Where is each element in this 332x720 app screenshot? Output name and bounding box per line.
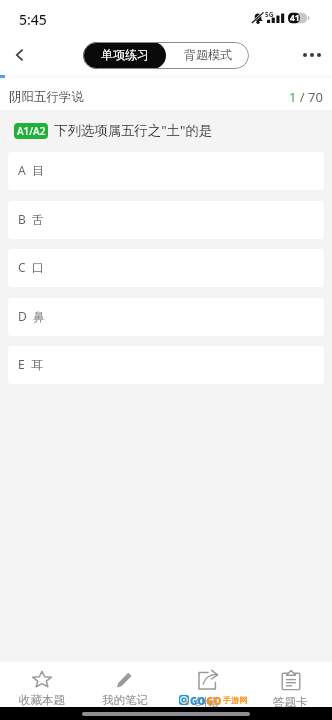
staticText: 口 [32, 260, 44, 275]
button[interactable]: More options [292, 35, 332, 75]
staticText: 我的笔记 [102, 693, 148, 707]
staticText: A1/A2 [17, 124, 46, 138]
staticText: 耳 [31, 357, 43, 372]
button[interactable]: 我的笔记 [83, 662, 166, 707]
button[interactable]: E [8, 346, 324, 384]
staticText: 单项练习 [101, 47, 149, 62]
staticText: GO [190, 694, 206, 705]
button[interactable]: Back [0, 35, 40, 75]
staticText: C [18, 259, 26, 275]
staticText: 鼻 [33, 309, 45, 324]
staticText: A [18, 162, 26, 178]
staticText: 舌 [32, 212, 44, 227]
button[interactable]: 纠错 [166, 662, 249, 707]
staticText: GO [206, 694, 222, 705]
staticText: 收藏本题 [19, 693, 65, 707]
staticText: 背题模式 [184, 47, 232, 62]
staticText: 答题卡 [273, 695, 308, 707]
button[interactable]: C [8, 249, 324, 287]
staticText: 5:45 [19, 10, 47, 29]
button[interactable]: 答题卡 [249, 662, 332, 707]
staticText: 纠错 [196, 695, 219, 707]
staticText: 5G [265, 10, 274, 19]
staticText: 1 / 70 [289, 88, 323, 106]
staticText: 下列选项属五行之"土"的是 [54, 121, 213, 139]
button[interactable]: 单项练习 [83, 42, 166, 69]
staticText: 阴阳五行学说 [9, 89, 84, 105]
button[interactable]: D [8, 298, 324, 336]
staticText: 手游网 [223, 695, 247, 705]
staticText: D [18, 308, 27, 324]
staticText: E [18, 356, 25, 372]
button[interactable]: 背题模式 [166, 42, 249, 69]
button[interactable]: A [8, 152, 324, 190]
staticText: 目 [32, 163, 44, 178]
button[interactable]: B [8, 201, 324, 239]
button[interactable]: 收藏本题 [0, 662, 83, 707]
staticText: B [18, 211, 26, 227]
staticText: 41 [290, 12, 300, 24]
